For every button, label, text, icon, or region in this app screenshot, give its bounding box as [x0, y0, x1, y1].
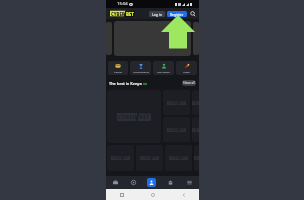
staticText: BET: [152, 156, 158, 160]
staticText: BET: [139, 113, 150, 121]
button[interactable]: CYBER: [107, 90, 161, 143]
staticText: CYBER: [112, 156, 123, 160]
staticText: Crash: [183, 70, 190, 73]
button[interactable]: Crash: [176, 61, 197, 75]
button[interactable]: Log in: [149, 11, 165, 17]
staticText: Log in: [152, 12, 162, 17]
staticText: CYBER: [168, 128, 179, 132]
staticText: CYBER: [195, 156, 199, 160]
button[interactable]: CYBER: [163, 90, 190, 115]
staticText: Live casino: [157, 70, 170, 73]
button[interactable]: [114, 21, 191, 56]
button[interactable]: CYBER: [165, 145, 192, 171]
button[interactable]: CYBER: [192, 117, 199, 142]
button[interactable]: CYBER: [194, 145, 199, 171]
staticText: Casino: [114, 70, 122, 73]
staticText: CYBER: [118, 113, 137, 121]
button[interactable]: Casino: [108, 61, 128, 75]
button[interactable]: CYBER BET home: [110, 10, 135, 17]
staticText: BET: [123, 156, 129, 160]
button[interactable]: Casino: [106, 176, 124, 189]
staticText: Show all: [183, 81, 195, 85]
staticText: BET: [179, 101, 185, 105]
button[interactable]: Search: [189, 10, 197, 18]
staticText: Tournaments: [133, 70, 149, 73]
button[interactable]: Live casino: [153, 61, 174, 75]
button[interactable]: CYBER: [107, 145, 134, 171]
button[interactable]: Profile: [142, 176, 161, 189]
button[interactable]: Live casino: [124, 176, 142, 189]
staticText: CYBER: [170, 156, 181, 160]
staticText: BET: [126, 11, 134, 17]
button[interactable]: Home: [137, 189, 168, 200]
button[interactable]: Show all: [182, 80, 196, 86]
staticText: CYBER: [111, 11, 125, 17]
staticText: CYBER: [193, 128, 199, 132]
staticText: BET: [181, 156, 187, 160]
button[interactable]: Register: [167, 11, 187, 17]
button[interactable]: CYBER: [192, 90, 199, 115]
staticText: 15:04: [117, 1, 128, 7]
staticText: BET: [179, 128, 185, 132]
button[interactable]: Promotions: [161, 176, 180, 189]
staticText: CYBER: [141, 156, 152, 160]
staticText: CYBER: [168, 101, 179, 105]
staticText: CYBER: [193, 101, 199, 105]
button[interactable]: Recents: [106, 189, 137, 200]
button[interactable]: CYBER: [163, 117, 190, 142]
button[interactable]: Menu: [180, 176, 199, 189]
staticText: Register: [170, 12, 184, 17]
staticText: The best in Kenya: [109, 81, 142, 86]
button[interactable]: CYBER: [136, 145, 163, 171]
button[interactable]: Back: [168, 189, 199, 200]
button[interactable]: Tournaments: [130, 61, 151, 75]
